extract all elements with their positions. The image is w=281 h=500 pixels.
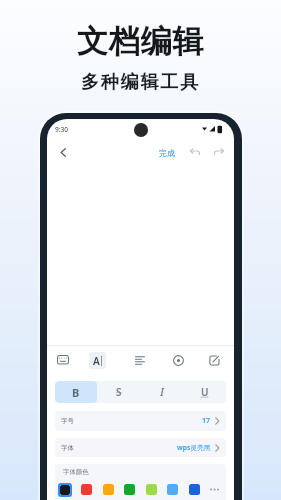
button[interactable] [81, 484, 92, 495]
button[interactable] [54, 351, 72, 369]
button[interactable] [52, 141, 74, 163]
staticText: U [201, 385, 209, 399]
button[interactable] [146, 484, 157, 495]
button[interactable]: A [89, 352, 106, 369]
button[interactable]: 字号 [55, 411, 226, 431]
button[interactable]: 完成 [147, 144, 187, 162]
staticText: 字号 [61, 417, 74, 425]
button[interactable] [209, 143, 228, 161]
button[interactable] [189, 484, 200, 495]
staticText: 字体 [61, 444, 74, 452]
button[interactable] [185, 143, 204, 161]
staticText: 字体颜色 [63, 468, 89, 476]
staticText: B [72, 385, 80, 400]
button[interactable]: B [55, 381, 97, 403]
staticText: 文档编辑 [77, 22, 205, 61]
button[interactable] [169, 351, 187, 369]
button[interactable] [124, 484, 135, 495]
button[interactable] [205, 351, 223, 369]
staticText: 多种编辑工具 [81, 71, 200, 94]
staticText: S [116, 385, 122, 399]
staticText: 完成 [159, 148, 175, 158]
button[interactable] [131, 351, 149, 369]
button[interactable]: I [140, 381, 183, 403]
button[interactable] [58, 483, 72, 497]
staticText: 9:30 [55, 125, 69, 134]
button[interactable] [167, 484, 178, 495]
staticText: I [160, 385, 164, 399]
button[interactable]: S [97, 381, 140, 403]
staticText: wps灵亮黑 [177, 443, 211, 452]
button[interactable]: U [183, 381, 226, 403]
button[interactable]: 字体 [55, 438, 226, 457]
staticText: 17 [202, 416, 211, 426]
staticText: A [93, 354, 100, 368]
button[interactable] [103, 484, 114, 495]
button[interactable] [209, 484, 222, 495]
